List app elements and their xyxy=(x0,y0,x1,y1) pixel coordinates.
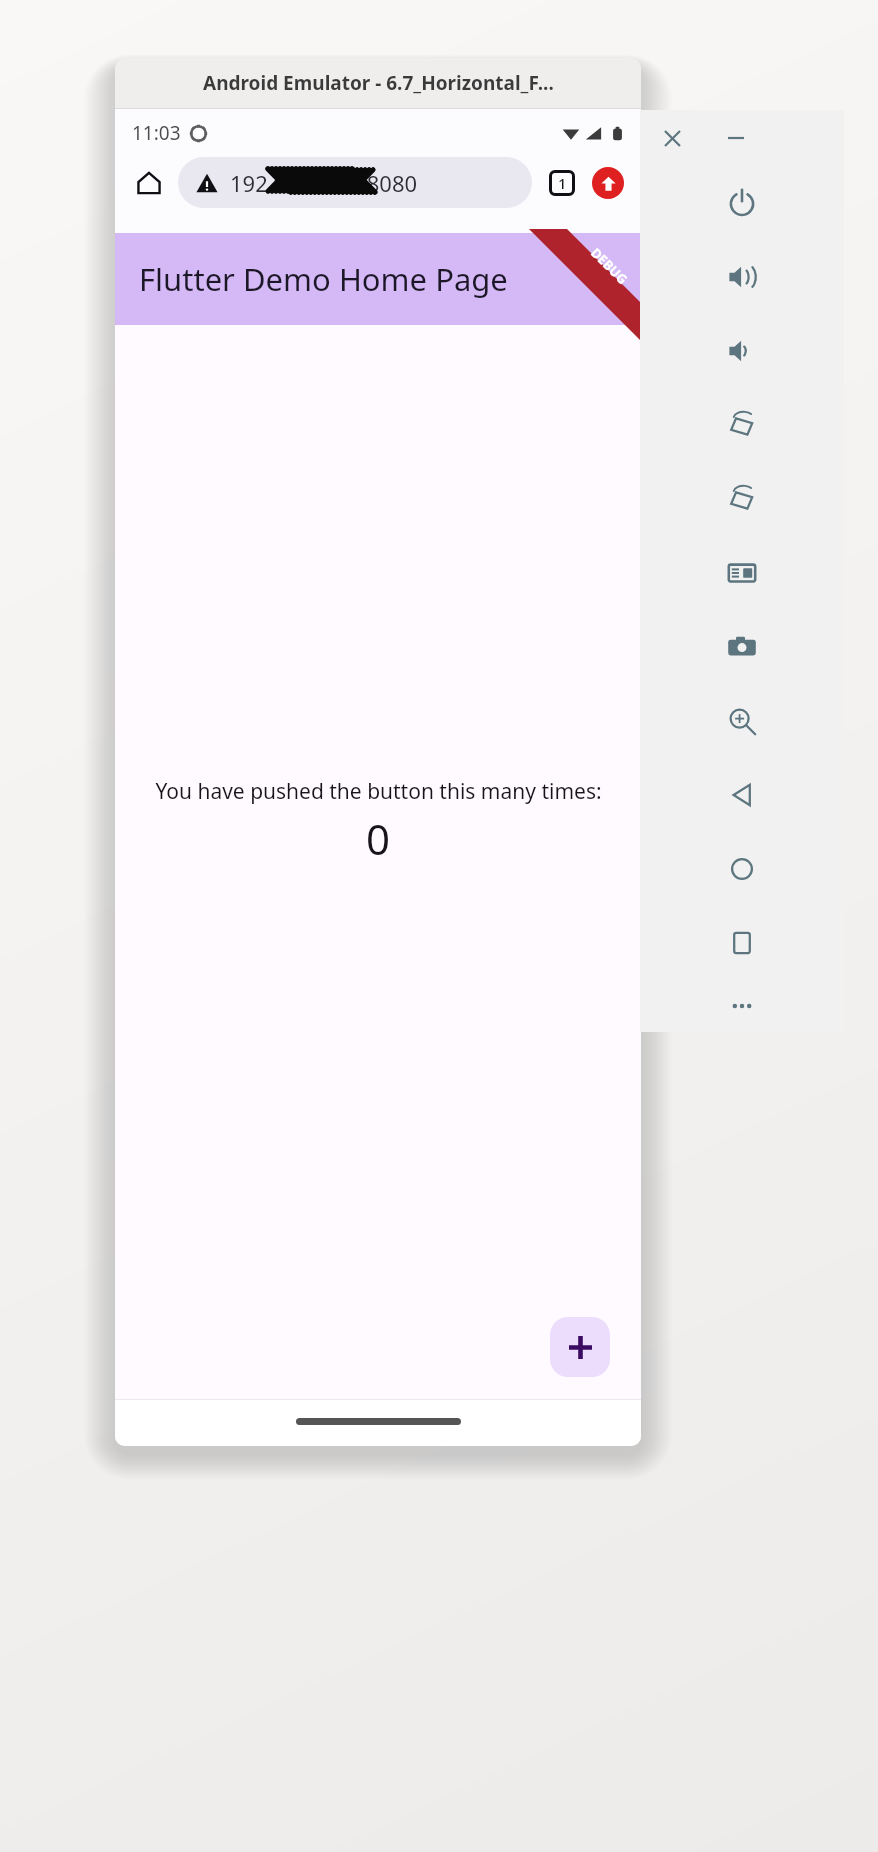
button[interactable]: Home xyxy=(126,160,172,206)
button[interactable]: Home xyxy=(640,832,844,906)
button[interactable]: 192.xxxxxxxx8080 xyxy=(178,157,532,208)
staticText: Android Emulator - 6.7_Horizontal_F... xyxy=(203,70,554,96)
button[interactable]: More xyxy=(640,980,844,1032)
staticText: You have pushed the button this many tim… xyxy=(155,777,602,806)
button[interactable]: Minimize xyxy=(718,120,754,156)
button[interactable]: Increment xyxy=(550,1317,610,1377)
button[interactable]: Volume down xyxy=(640,314,844,388)
button[interactable]: Tabs xyxy=(540,161,584,205)
button[interactable]: Rotate right xyxy=(640,462,844,536)
button[interactable]: Fold xyxy=(640,536,844,610)
button[interactable]: Close xyxy=(654,120,690,156)
button[interactable]: Update available xyxy=(586,161,630,205)
staticText: 192.xxxxxxxx8080 xyxy=(230,168,418,198)
button[interactable]: Back xyxy=(640,758,844,832)
staticText: 11:03 xyxy=(132,120,181,146)
button[interactable]: Power xyxy=(640,166,844,240)
button[interactable]: Volume up xyxy=(640,240,844,314)
button[interactable]: Overview xyxy=(640,906,844,980)
staticText: 1 xyxy=(558,173,567,193)
staticText: DEBUG xyxy=(587,244,632,288)
staticText: Flutter Demo Home Page xyxy=(139,258,508,300)
button[interactable]: Rotate left xyxy=(640,388,844,462)
button[interactable]: Zoom xyxy=(640,684,844,758)
button[interactable]: Screenshot xyxy=(640,610,844,684)
staticText: 0 xyxy=(366,810,391,867)
